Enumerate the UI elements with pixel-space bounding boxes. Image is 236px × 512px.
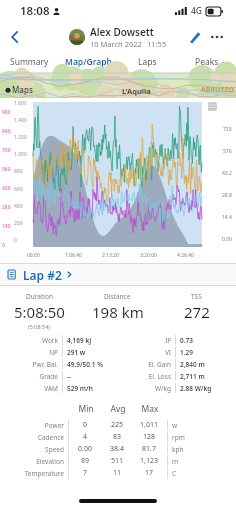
staticText: El. Gain: [133, 360, 171, 369]
staticText: Map/Graph: [65, 56, 112, 68]
staticText: --: [67, 372, 133, 381]
staticText: 4G: [191, 5, 203, 17]
staticText: Duration: [26, 292, 53, 301]
staticText: 4:26:40: [177, 252, 194, 259]
staticText: 272: [184, 302, 210, 322]
staticText: 00:00: [27, 252, 40, 259]
staticText: Work: [0, 336, 58, 345]
staticText: 840: [2, 128, 11, 135]
staticText: 2,840 m: [180, 360, 236, 369]
staticText: 5:08:50: [14, 302, 65, 322]
staticText: 0.00: [222, 236, 232, 243]
staticText: Summary: [10, 56, 49, 68]
staticText: 198 km: [92, 302, 144, 322]
staticText: Maps: [12, 84, 33, 95]
staticText: 4: [69, 432, 101, 442]
staticText: 1,200: [14, 134, 27, 141]
staticText: 511: [101, 456, 133, 466]
staticText: 1,600: [14, 100, 27, 107]
staticText: L'Aquila: [122, 86, 151, 96]
button[interactable]: Laps: [118, 51, 177, 73]
staticText: 400: [14, 203, 23, 210]
staticText: 14.4: [222, 214, 232, 221]
staticText: 560: [2, 166, 11, 173]
staticText: 11: [101, 468, 133, 478]
staticText: m: [172, 457, 179, 466]
staticText: VI: [133, 348, 171, 357]
staticText: 800: [14, 168, 23, 175]
staticText: Cadence: [0, 433, 64, 442]
staticText: 18:08: [20, 3, 50, 19]
staticText: ABRUZZO: [201, 85, 234, 95]
staticText: Power: [0, 421, 64, 430]
staticText: 1,123: [133, 456, 165, 466]
staticText: 83: [101, 432, 133, 442]
staticText: Lap #2: [23, 267, 62, 283]
staticText: 291 w: [67, 348, 133, 357]
staticText: 980: [2, 109, 11, 116]
staticText: 81.7: [133, 444, 165, 454]
staticText: 529 m/h: [67, 384, 133, 393]
button[interactable]: Map/Graph: [59, 51, 118, 73]
staticText: 200: [14, 220, 23, 227]
staticText: 0.73: [180, 336, 236, 345]
staticText: rpm: [172, 433, 185, 442]
staticText: Temperature: [0, 469, 64, 478]
staticText: 1.29: [180, 348, 236, 357]
staticText: 600: [14, 186, 23, 193]
staticText: kph: [172, 445, 184, 454]
staticText: w: [172, 421, 178, 430]
staticText: 28.8: [222, 192, 232, 199]
staticText: 700: [2, 147, 11, 154]
button[interactable]: Lap #2: [0, 264, 236, 285]
staticText: 43.2: [222, 170, 232, 177]
staticText: 17: [133, 468, 165, 478]
staticText: Min: [70, 403, 102, 415]
button[interactable]: More options: [206, 26, 228, 48]
staticText: VAM: [0, 384, 58, 393]
staticText: 11:55: [147, 39, 167, 49]
button[interactable]: Back: [0, 22, 30, 51]
staticText: Pwr. Bal.: [0, 360, 58, 369]
staticText: Distance: [104, 292, 131, 301]
staticText: Peaks: [195, 56, 219, 68]
staticText: 280: [2, 204, 11, 211]
staticText: 0.00: [69, 444, 101, 454]
staticText: Laps: [138, 56, 157, 68]
staticText: Avg: [102, 403, 134, 415]
staticText: 576: [223, 148, 232, 155]
staticText: Speed: [0, 445, 64, 454]
staticText: W/kg: [133, 384, 171, 393]
staticText: 2,711 m: [180, 372, 236, 381]
staticText: (5:08:54): [28, 323, 50, 330]
staticText: 3:20:00: [140, 252, 157, 259]
staticText: 0: [69, 420, 101, 430]
staticText: 225: [101, 420, 133, 430]
staticText: El. Loss: [133, 372, 171, 381]
staticText: 2.88 W/kg: [180, 384, 236, 393]
staticText: 720: [223, 126, 232, 133]
staticText: C: [172, 469, 177, 478]
staticText: 128: [133, 432, 165, 442]
staticText: TSS: [191, 292, 202, 301]
staticText: 0: [14, 237, 17, 244]
staticText: IF: [133, 336, 171, 345]
button[interactable]: Edit: [184, 26, 206, 48]
staticText: Max: [134, 403, 166, 415]
button[interactable]: Peaks: [177, 51, 236, 73]
staticText: 1,400: [14, 117, 27, 124]
staticText: 2:13:20: [102, 252, 119, 259]
staticText: 1,000: [14, 151, 27, 158]
staticText: 420: [2, 185, 11, 192]
staticText: 7: [69, 468, 101, 478]
staticText: NP: [0, 348, 58, 357]
staticText: Alex Dowsett: [90, 25, 154, 39]
staticText: 4,169 kJ: [67, 336, 133, 345]
staticText: 1,011: [133, 420, 165, 430]
staticText: Elevation: [0, 457, 64, 466]
staticText: Grade: [0, 372, 58, 381]
staticText: 0: [2, 242, 5, 249]
staticText: 49.9/50.1 %: [67, 360, 133, 369]
button[interactable]: Chart legend: [207, 101, 218, 112]
button[interactable]: Summary: [0, 51, 59, 73]
